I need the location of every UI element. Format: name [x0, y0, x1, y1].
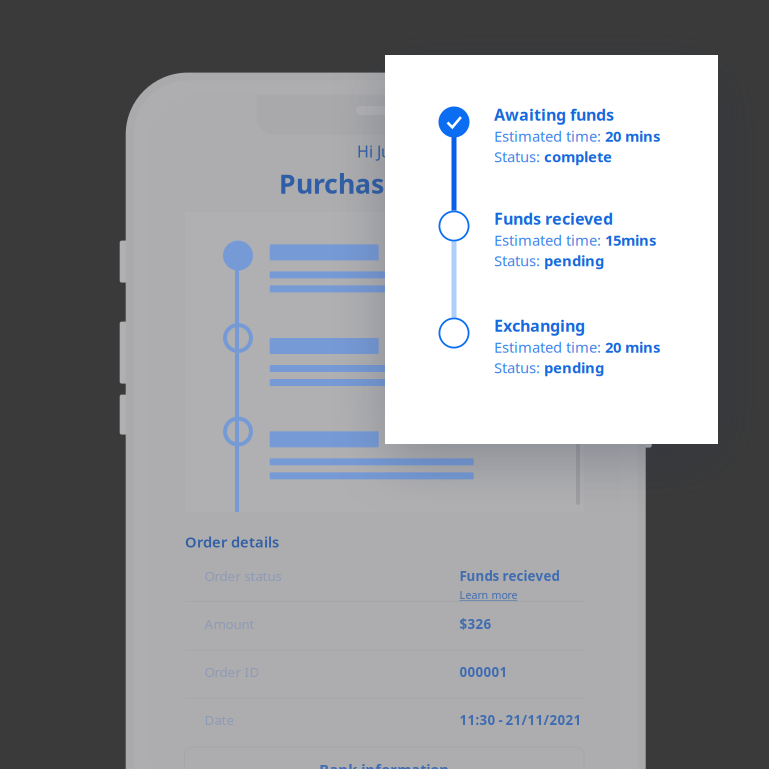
staticText: Order ID — [204, 663, 259, 681]
staticText: Order details — [185, 532, 279, 551]
staticText: 20 mins — [605, 126, 660, 146]
staticText: 20 mins — [605, 337, 660, 357]
staticText: 11:30 - 21/11/2021 — [459, 711, 581, 729]
staticText: Purchase status — [279, 166, 490, 201]
staticText: Estimated time: — [494, 126, 605, 146]
staticText: Status: — [494, 358, 544, 377]
staticText: Estimated time: — [494, 337, 605, 357]
button[interactable]: Amount — [204, 604, 585, 652]
staticText: Amount — [204, 615, 254, 633]
button[interactable]: Bank information — [184, 747, 584, 769]
staticText: pending — [544, 251, 604, 270]
staticText: complete — [544, 147, 612, 166]
staticText: 000001 — [459, 663, 507, 681]
staticText: pending — [544, 358, 604, 377]
staticText: Status: — [494, 251, 544, 270]
staticText: Date — [204, 711, 234, 729]
staticText: Exchanging — [494, 315, 585, 336]
staticText: Awaiting funds — [494, 104, 614, 125]
staticText: Bank information — [319, 759, 449, 769]
staticText: Estimated time: — [494, 230, 605, 250]
staticText: Funds recieved — [459, 567, 559, 585]
staticText: Learn more — [459, 588, 517, 602]
staticText: Hi Julie, — [357, 141, 412, 162]
button[interactable]: Order ID — [204, 652, 585, 700]
staticText: Order status — [204, 567, 281, 585]
staticText: 15mins — [605, 230, 656, 250]
button[interactable]: Date — [204, 700, 585, 748]
staticText: Funds recieved — [494, 208, 613, 229]
staticText: $326 — [459, 615, 491, 633]
button[interactable]: Order status — [204, 556, 585, 604]
staticText: Status: — [494, 147, 544, 166]
